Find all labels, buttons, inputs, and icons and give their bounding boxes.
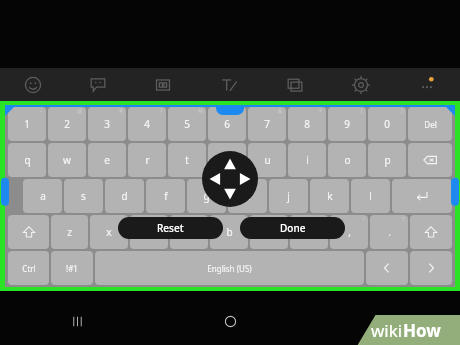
- staticText: r: [145, 153, 150, 167]
- button[interactable]: 6: [208, 107, 246, 141]
- staticText: x: [106, 225, 112, 239]
- button[interactable]: Recents: [0, 297, 154, 345]
- button[interactable]: .: [370, 215, 408, 249]
- staticText: k: [327, 189, 333, 203]
- button[interactable]: Home: [154, 297, 307, 345]
- staticText: ^: [239, 107, 243, 115]
- staticText: b: [226, 225, 233, 239]
- button[interactable]: 7: [248, 107, 286, 141]
- button[interactable]: n: [250, 215, 288, 249]
- button[interactable]: Back: [307, 297, 460, 345]
- staticText: wiki: [371, 319, 403, 342]
- button[interactable]: 2: [48, 107, 86, 141]
- button[interactable]: j: [269, 179, 308, 213]
- button[interactable]: e: [88, 143, 126, 177]
- button[interactable]: Stickers: [65, 68, 130, 101]
- button[interactable]: u: [248, 143, 286, 177]
- staticText: !: [363, 215, 365, 223]
- staticText: o: [344, 153, 351, 167]
- button[interactable]: Text edit: [196, 68, 262, 101]
- staticText: ): [401, 107, 403, 115]
- button[interactable]: Reset: [118, 217, 223, 239]
- button[interactable]: 9: [328, 107, 366, 141]
- button[interactable]: h: [228, 179, 267, 213]
- staticText: Done: [280, 221, 306, 235]
- staticText: t: [185, 153, 189, 167]
- staticText: English (US): [207, 263, 252, 274]
- staticText: a: [40, 189, 46, 203]
- staticText: *: [319, 107, 323, 115]
- button[interactable]: More options: [394, 68, 460, 101]
- button[interactable]: b: [210, 215, 248, 249]
- staticText: y: [224, 153, 230, 167]
- button[interactable]: r: [128, 143, 166, 177]
- button[interactable]: 5: [168, 107, 206, 141]
- button[interactable]: s: [64, 179, 103, 213]
- button[interactable]: o: [328, 143, 366, 177]
- button[interactable]: Shift: [410, 215, 452, 249]
- staticText: .: [388, 225, 391, 239]
- button[interactable]: Previous: [366, 251, 408, 285]
- staticText: p: [384, 153, 391, 167]
- button[interactable]: 3: [88, 107, 126, 141]
- staticText: /: [160, 107, 163, 115]
- staticText: ?: [402, 215, 405, 223]
- button[interactable]: Next: [410, 251, 452, 285]
- button[interactable]: z: [51, 215, 88, 249]
- button[interactable]: Del: [408, 107, 452, 141]
- staticText: d: [121, 189, 128, 203]
- button[interactable]: m: [290, 215, 328, 249]
- button[interactable]: k: [310, 179, 349, 213]
- button[interactable]: 8: [288, 107, 326, 141]
- button[interactable]: English (US): [95, 251, 364, 285]
- staticText: Ctrl: [22, 263, 36, 274]
- staticText: !#1: [66, 263, 78, 274]
- staticText: 3: [104, 117, 110, 131]
- button[interactable]: a: [23, 179, 62, 213]
- button[interactable]: ,: [330, 215, 368, 249]
- button[interactable]: 1: [8, 107, 46, 141]
- button[interactable]: GIF: [130, 68, 196, 101]
- staticText: 0: [384, 117, 390, 131]
- staticText: f: [164, 189, 168, 203]
- staticText: h: [244, 189, 251, 203]
- button[interactable]: l: [351, 179, 390, 213]
- button[interactable]: 0: [368, 107, 406, 141]
- button[interactable]: Backspace: [408, 143, 452, 177]
- staticText: ~: [39, 107, 43, 115]
- button[interactable]: 4: [128, 107, 166, 141]
- button[interactable]: f: [146, 179, 185, 213]
- staticText: #: [119, 107, 123, 115]
- staticText: Reset: [157, 221, 184, 235]
- staticText: m: [304, 225, 314, 239]
- button[interactable]: q: [8, 143, 46, 177]
- button[interactable]: i: [288, 143, 326, 177]
- staticText: &: [278, 107, 283, 115]
- staticText: ,: [348, 225, 351, 239]
- button[interactable]: Settings: [328, 68, 394, 101]
- button[interactable]: Ctrl: [8, 251, 49, 285]
- button[interactable]: g: [187, 179, 226, 213]
- staticText: u: [264, 153, 271, 167]
- button[interactable]: Enter: [392, 179, 452, 213]
- button[interactable]: x: [90, 215, 128, 249]
- button[interactable]: Direction pad: [202, 151, 258, 207]
- button[interactable]: c: [130, 215, 168, 249]
- button[interactable]: Clipboard: [262, 68, 328, 101]
- button[interactable]: Shift: [8, 215, 49, 249]
- staticText: 1: [24, 117, 30, 131]
- button[interactable]: !#1: [51, 251, 93, 285]
- button[interactable]: t: [168, 143, 206, 177]
- button[interactable]: w: [48, 143, 86, 177]
- staticText: 2: [64, 117, 70, 131]
- button[interactable]: d: [105, 179, 144, 213]
- button[interactable]: v: [170, 215, 208, 249]
- button[interactable]: Done: [240, 217, 345, 239]
- button[interactable]: p: [368, 143, 406, 177]
- button[interactable]: y: [208, 143, 246, 177]
- staticText: Del: [424, 119, 437, 130]
- button[interactable]: Emoji: [0, 68, 65, 101]
- staticText: w: [63, 153, 71, 167]
